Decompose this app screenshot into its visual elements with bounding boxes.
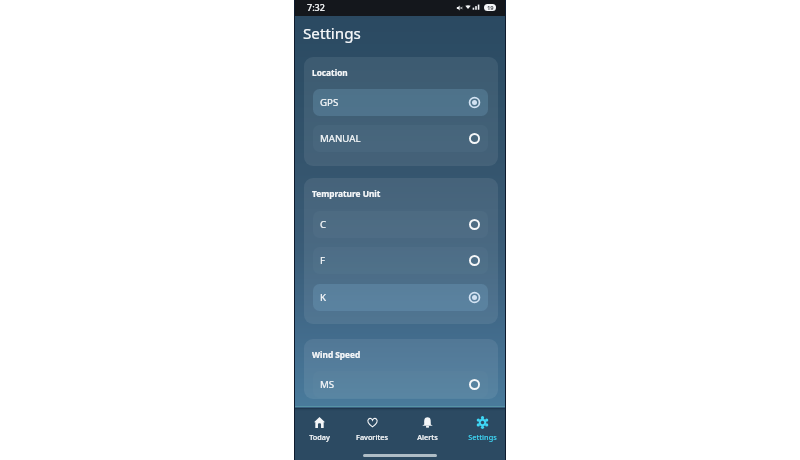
button[interactable]: C <box>313 211 488 238</box>
other: Today <box>314 417 325 428</box>
staticText: Wind Speed <box>312 349 361 360</box>
button[interactable]: GPS <box>313 89 488 116</box>
button[interactable]: K <box>313 284 488 311</box>
other: Settings <box>477 417 488 428</box>
staticText: MS <box>320 378 335 391</box>
staticText: Settings <box>303 23 361 44</box>
staticText: 19 <box>487 4 494 11</box>
other: Favorites <box>367 417 378 428</box>
staticText: F <box>320 254 326 267</box>
other: Alerts <box>422 417 433 428</box>
staticText: Favorites <box>356 432 388 442</box>
button[interactable]: F <box>313 247 488 274</box>
staticText: Settings <box>468 432 497 442</box>
staticText: C <box>320 218 327 231</box>
staticText: GPS <box>320 96 339 109</box>
button[interactable]: Favorites <box>347 417 397 442</box>
staticText: 7:32 <box>307 1 325 13</box>
button[interactable]: MANUAL <box>313 125 488 152</box>
button[interactable]: Today <box>294 417 344 442</box>
staticText: Temprature Unit <box>312 188 381 199</box>
staticText: Today <box>309 432 330 442</box>
button[interactable]: Alerts <box>402 417 452 442</box>
staticText: Alerts <box>417 432 438 442</box>
button[interactable]: MS <box>313 371 488 398</box>
staticText: Location <box>312 67 348 78</box>
button[interactable]: Settings <box>457 417 507 442</box>
staticText: K <box>320 291 326 304</box>
staticText: MANUAL <box>320 132 361 145</box>
